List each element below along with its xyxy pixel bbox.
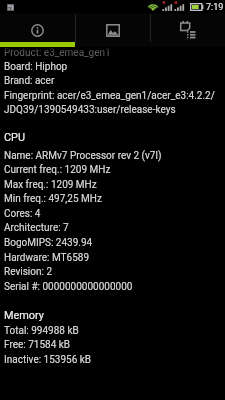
staticText: Architecture: 7 — [4, 222, 69, 234]
staticText: Name: ARMv7 Processor rev 2 (v7l) — [4, 150, 162, 162]
staticText: Max freq.: 1209 MHz — [4, 179, 97, 191]
staticText: Inactive: 153956 kB — [4, 354, 92, 366]
staticText: Free: 71584 kB — [4, 339, 71, 351]
staticText: Brand: acer — [4, 75, 55, 87]
staticText: CPU — [4, 131, 26, 144]
button[interactable]: Display info tab — [76, 13, 150, 47]
staticText: Total: 994988 kB — [4, 325, 79, 337]
staticText: Board: Hiphop — [4, 61, 68, 73]
staticText: Current freq.: 1209 MHz — [4, 164, 111, 176]
staticText: 7:19 — [206, 2, 224, 13]
staticText: Memory — [4, 309, 44, 322]
staticText: Product: e3_emea_gen1 — [4, 47, 111, 59]
staticText: Revision: 2 — [4, 266, 53, 278]
staticText: Hardware: MT6589 — [4, 252, 89, 264]
staticText: Serial #: 0000000000000000 — [4, 281, 133, 293]
staticText: Min freq.: 497,25 MHz — [4, 193, 102, 205]
staticText: JDQ39/1390549433:user/release-keys — [4, 104, 176, 116]
button[interactable]: Battery info tab — [151, 13, 225, 47]
staticText: BogoMIPS: 2439.94 — [4, 237, 93, 249]
staticText: Fingerprint: acer/e3_emea_gen1/acer_e3:4… — [4, 90, 215, 102]
staticText: Cores: 4 — [4, 208, 41, 220]
button[interactable]: Device info tab — [0, 13, 75, 47]
